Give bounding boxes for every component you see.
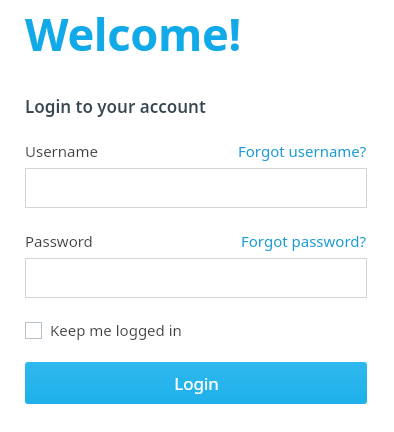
- staticText: Username: [25, 141, 98, 161]
- staticText: Login to your account: [25, 95, 206, 118]
- staticText: Keep me logged in: [50, 320, 182, 340]
- button[interactable]: Forgot username?: [238, 141, 367, 161]
- button[interactable]: Text input field: [25, 168, 367, 208]
- staticText: Forgot username?: [238, 141, 367, 161]
- staticText: Forgot password?: [241, 231, 367, 251]
- button[interactable]: Keep me logged in: [25, 319, 182, 341]
- button[interactable]: Text input field: [25, 258, 367, 298]
- button[interactable]: Login: [25, 362, 367, 404]
- staticText: Login: [174, 372, 219, 395]
- staticText: Password: [25, 231, 93, 251]
- button[interactable]: Forgot password?: [241, 231, 367, 251]
- staticText: Welcome!: [25, 3, 242, 64]
